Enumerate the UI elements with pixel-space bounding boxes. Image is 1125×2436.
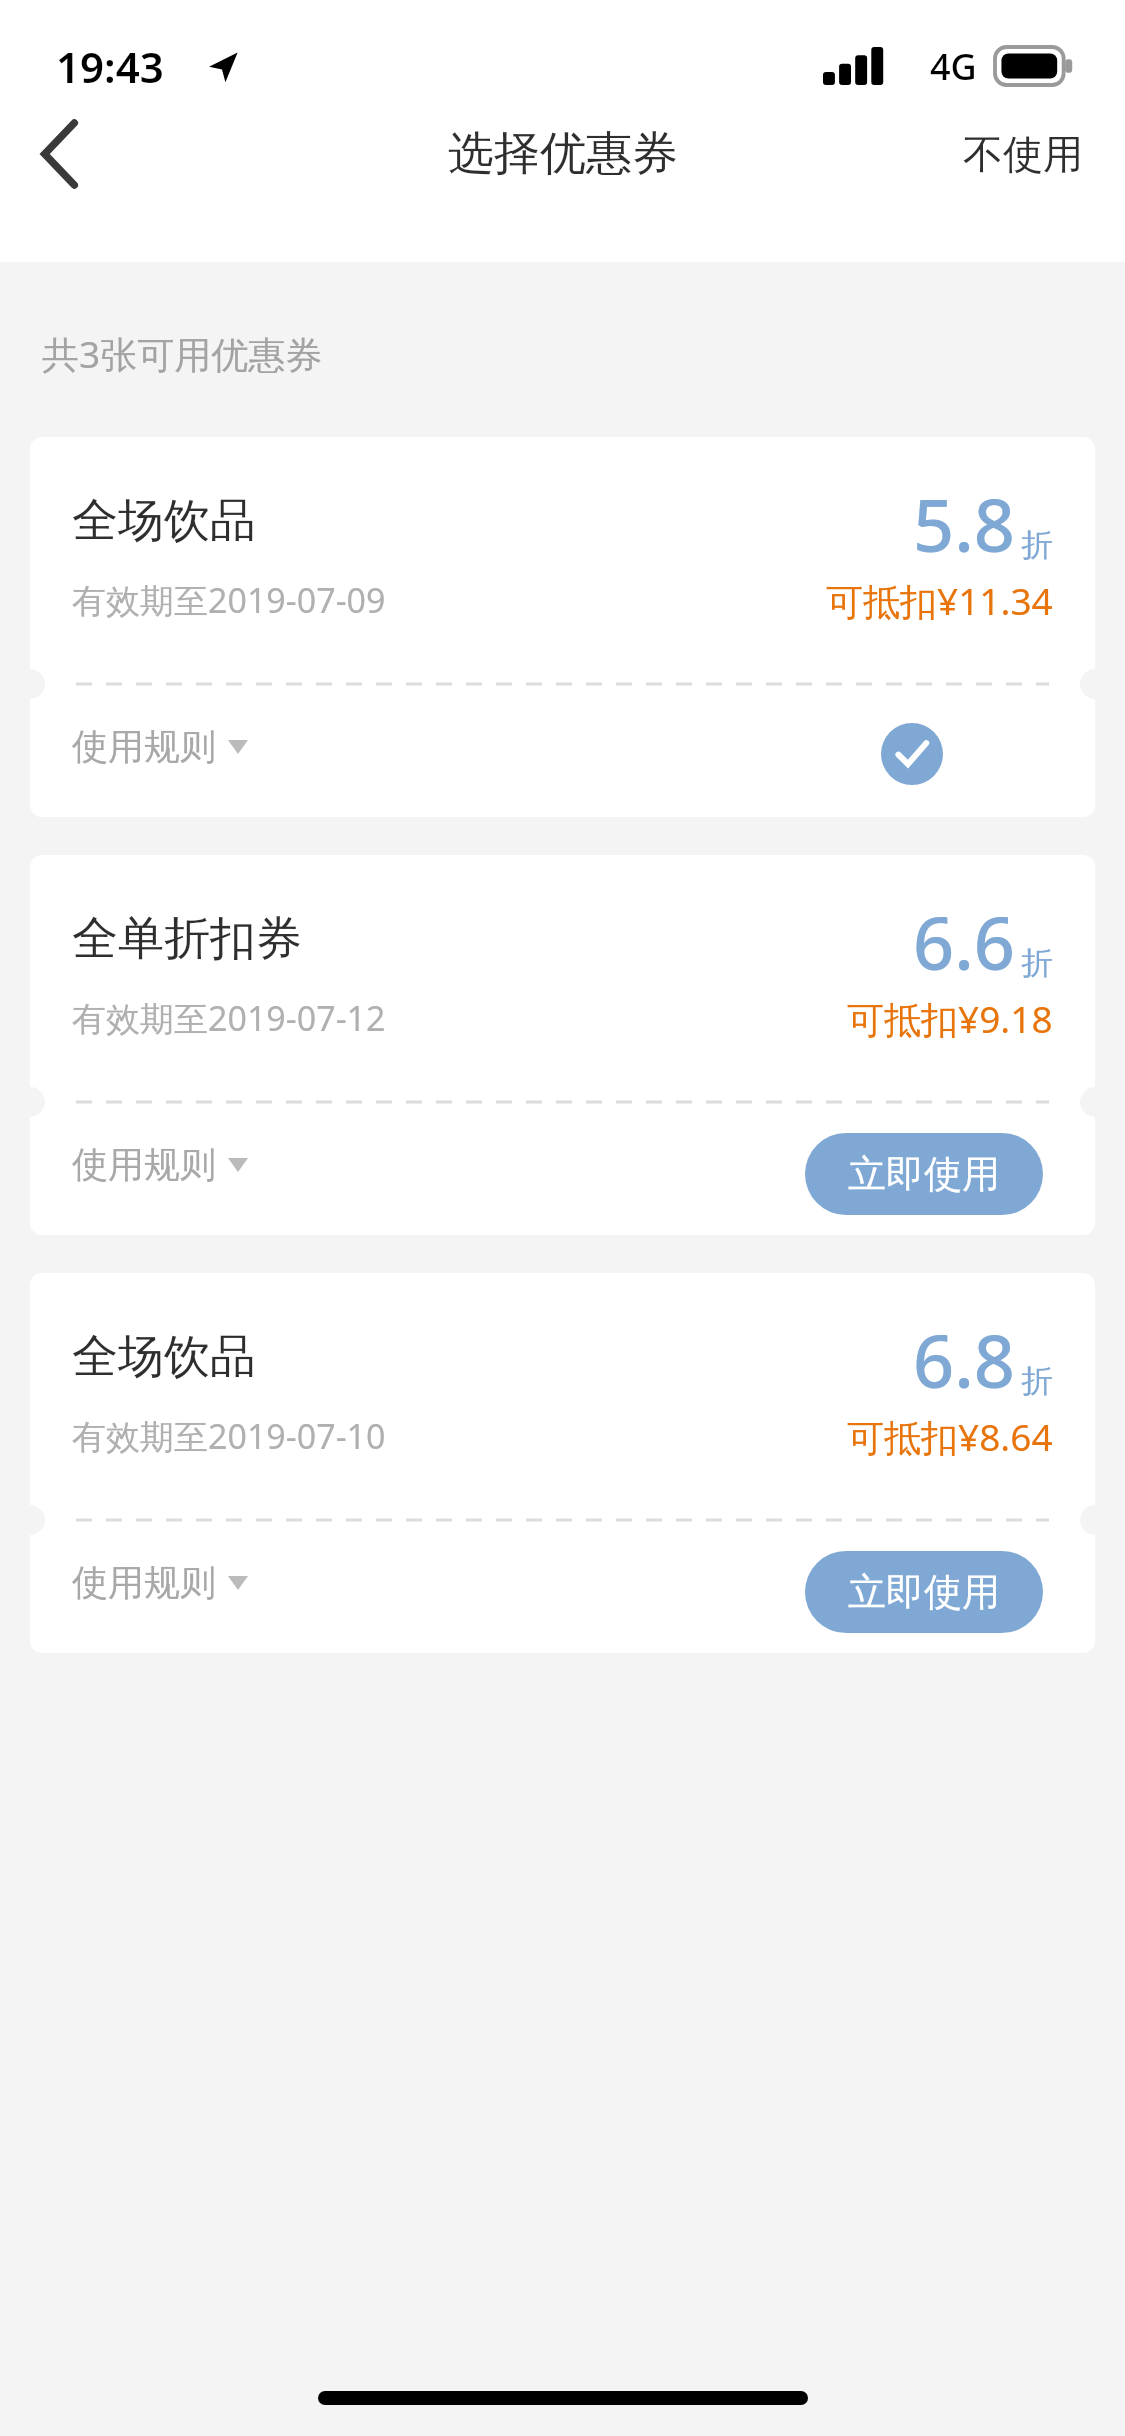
button[interactable]: 全场饮品 [30, 437, 1095, 817]
staticText: 有效期至2019-07-10 [72, 1413, 386, 1459]
button[interactable]: Selected [881, 723, 943, 785]
staticText: 全单折扣券 [72, 910, 302, 968]
staticText: 可抵扣¥8.64 [847, 1411, 1053, 1462]
staticText: 不使用 [963, 129, 1083, 179]
button[interactable]: 使用规则 [72, 1142, 248, 1187]
button[interactable]: 使用规则 [72, 1560, 248, 1605]
button[interactable]: 使用规则 [72, 724, 248, 769]
staticText: 6.6 [913, 893, 1015, 991]
staticText: 5.8 [913, 475, 1015, 573]
button[interactable]: 立即使用 [805, 1133, 1043, 1215]
staticText: 选择优惠券 [448, 125, 678, 183]
staticText: 4G [930, 42, 977, 91]
staticText: 立即使用 [848, 1150, 1000, 1198]
staticText: 立即使用 [848, 1568, 1000, 1616]
staticText: 使用规则 [72, 1142, 216, 1187]
staticText: 共3张可用优惠券 [42, 328, 323, 379]
staticText: 折 [1021, 1361, 1053, 1401]
button[interactable]: 立即使用 [805, 1551, 1043, 1633]
staticText: 全场饮品 [72, 492, 256, 550]
button[interactable]: 全单折扣券 [30, 855, 1095, 1235]
staticText: 有效期至2019-07-09 [72, 577, 386, 623]
staticText: 可抵扣¥11.34 [826, 575, 1053, 626]
staticText: 使用规则 [72, 1560, 216, 1605]
staticText: 使用规则 [72, 724, 216, 769]
staticText: 可抵扣¥9.18 [847, 993, 1053, 1044]
staticText: 19:43 [56, 38, 164, 95]
staticText: 折 [1021, 525, 1053, 565]
button[interactable]: 全场饮品 [30, 1273, 1095, 1653]
button[interactable]: 不使用 [963, 129, 1083, 179]
staticText: 全场饮品 [72, 1328, 256, 1386]
staticText: 有效期至2019-07-12 [72, 995, 386, 1041]
button[interactable]: Back [0, 94, 120, 214]
staticText: 6.8 [913, 1311, 1015, 1409]
staticText: 折 [1021, 943, 1053, 983]
